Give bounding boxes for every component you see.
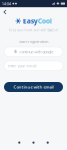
staticText: start registration xyxy=(19,39,48,44)
staticText: 14:04 xyxy=(2,1,11,6)
button[interactable]: G xyxy=(4,47,63,56)
button[interactable]: Sign in option xyxy=(18,141,20,144)
button[interactable]: Back xyxy=(1,8,8,15)
staticText: enter your email xyxy=(7,63,36,68)
staticText: Easy xyxy=(23,17,38,25)
button[interactable]: Sign in option xyxy=(47,141,49,144)
button[interactable]: Sign in option xyxy=(32,141,35,144)
staticText: Keep your home cool with EasyCool xyxy=(8,28,58,32)
staticText: Continue with email xyxy=(13,84,53,90)
button[interactable]: Continue with email xyxy=(4,82,63,92)
staticText: G xyxy=(15,50,17,53)
staticText: Cool xyxy=(38,17,52,25)
staticText: continue with google xyxy=(19,49,53,54)
button[interactable]: enter your email xyxy=(4,61,63,70)
